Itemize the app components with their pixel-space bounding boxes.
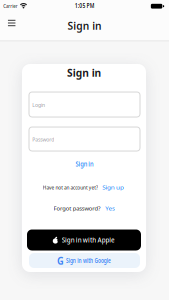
button[interactable]: Forgot password? bbox=[54, 204, 115, 212]
staticText: 1:05 PM bbox=[59, 0, 110, 14]
staticText: Forgot password? bbox=[23, 199, 131, 217]
staticText: Carrier bbox=[0, 0, 32, 14]
staticText: Yes bbox=[99, 199, 120, 217]
staticText: Sign in bbox=[55, 61, 113, 84]
staticText: G bbox=[55, 252, 65, 269]
button[interactable]: Have not an account yet? bbox=[42, 183, 124, 191]
staticText: Login bbox=[22, 96, 56, 113]
staticText: Sign up bbox=[90, 178, 135, 196]
button[interactable]: Login bbox=[29, 92, 140, 117]
staticText: Sign in bbox=[63, 155, 105, 173]
button[interactable]: Password bbox=[29, 127, 140, 151]
staticText: Have not an account yet? bbox=[0, 178, 147, 196]
button[interactable]: Sign in bbox=[74, 159, 95, 168]
staticText: Password bbox=[14, 130, 72, 148]
button[interactable]: Sign in with Apple bbox=[27, 229, 141, 250]
staticText: Sign in with Apple bbox=[32, 231, 145, 249]
button[interactable]: Menu bbox=[6, 17, 18, 29]
staticText: Sign in with Google bbox=[26, 252, 151, 269]
button[interactable]: G bbox=[29, 253, 140, 268]
staticText: Sign in bbox=[55, 14, 113, 37]
